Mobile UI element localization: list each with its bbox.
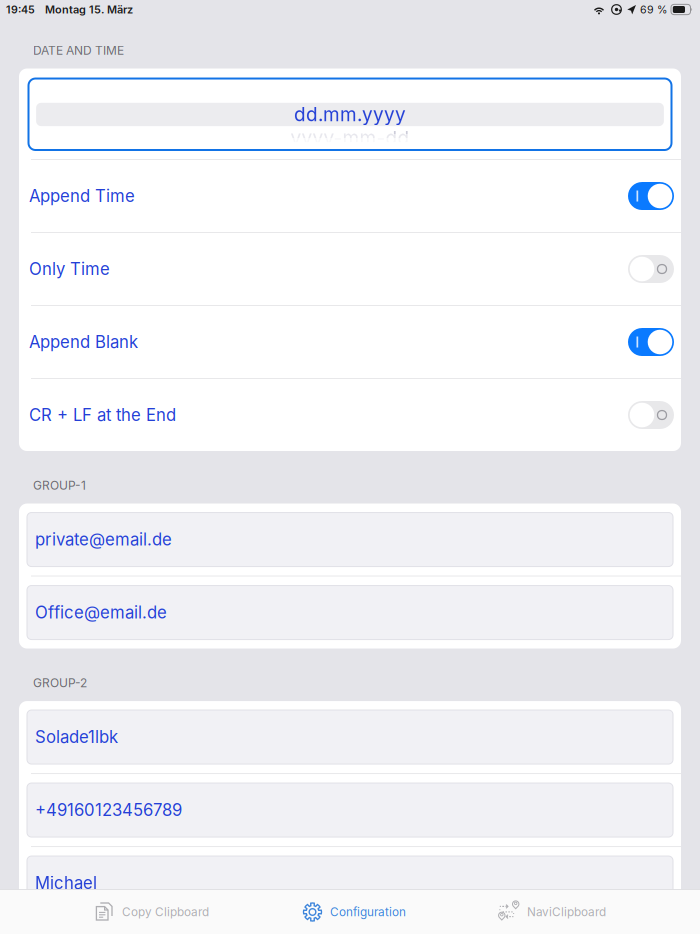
staticText: GROUP-1	[33, 478, 86, 492]
staticText: +49160123456789	[35, 800, 182, 820]
staticText: Configuration	[330, 905, 406, 919]
button[interactable]: Only Time	[19, 233, 681, 305]
staticText: Append Blank	[29, 332, 138, 352]
staticText: dd.mm.yyyy	[294, 103, 406, 126]
staticText: GROUP-2	[33, 675, 87, 690]
button[interactable]: NaviClipboard	[499, 890, 606, 934]
button[interactable]: Michael	[19, 847, 681, 919]
staticText: 19:45	[6, 3, 35, 16]
button[interactable]: Solade1lbk	[19, 701, 681, 773]
button[interactable]: Append Blank	[19, 306, 681, 378]
button[interactable]: CR + LF at the End	[19, 379, 681, 451]
staticText: Office@email.de	[35, 602, 167, 623]
button[interactable]: private@email.de	[19, 503, 681, 575]
button[interactable]: +49160123456789	[19, 774, 681, 846]
button[interactable]: Configuration	[302, 890, 406, 934]
staticText: yyyy-mm-dd	[290, 126, 409, 149]
staticText: Only Time	[29, 259, 110, 279]
staticText: CR + LF at the End	[29, 405, 176, 425]
staticText: NaviClipboard	[527, 905, 606, 919]
staticText: Michael	[35, 873, 97, 893]
staticText: Copy Clipboard	[122, 905, 209, 919]
button[interactable]: Append Time	[19, 160, 681, 232]
button[interactable]: Office@email.de	[19, 576, 681, 648]
staticText: Solade1lbk	[35, 727, 118, 747]
staticText: private@email.de	[35, 529, 172, 550]
staticText: Montag 15. März	[45, 3, 133, 16]
button[interactable]: Copy Clipboard	[94, 890, 209, 934]
staticText: DATE AND TIME	[33, 43, 124, 57]
staticText: 69 %	[640, 3, 667, 16]
staticText: Append Time	[29, 186, 135, 206]
